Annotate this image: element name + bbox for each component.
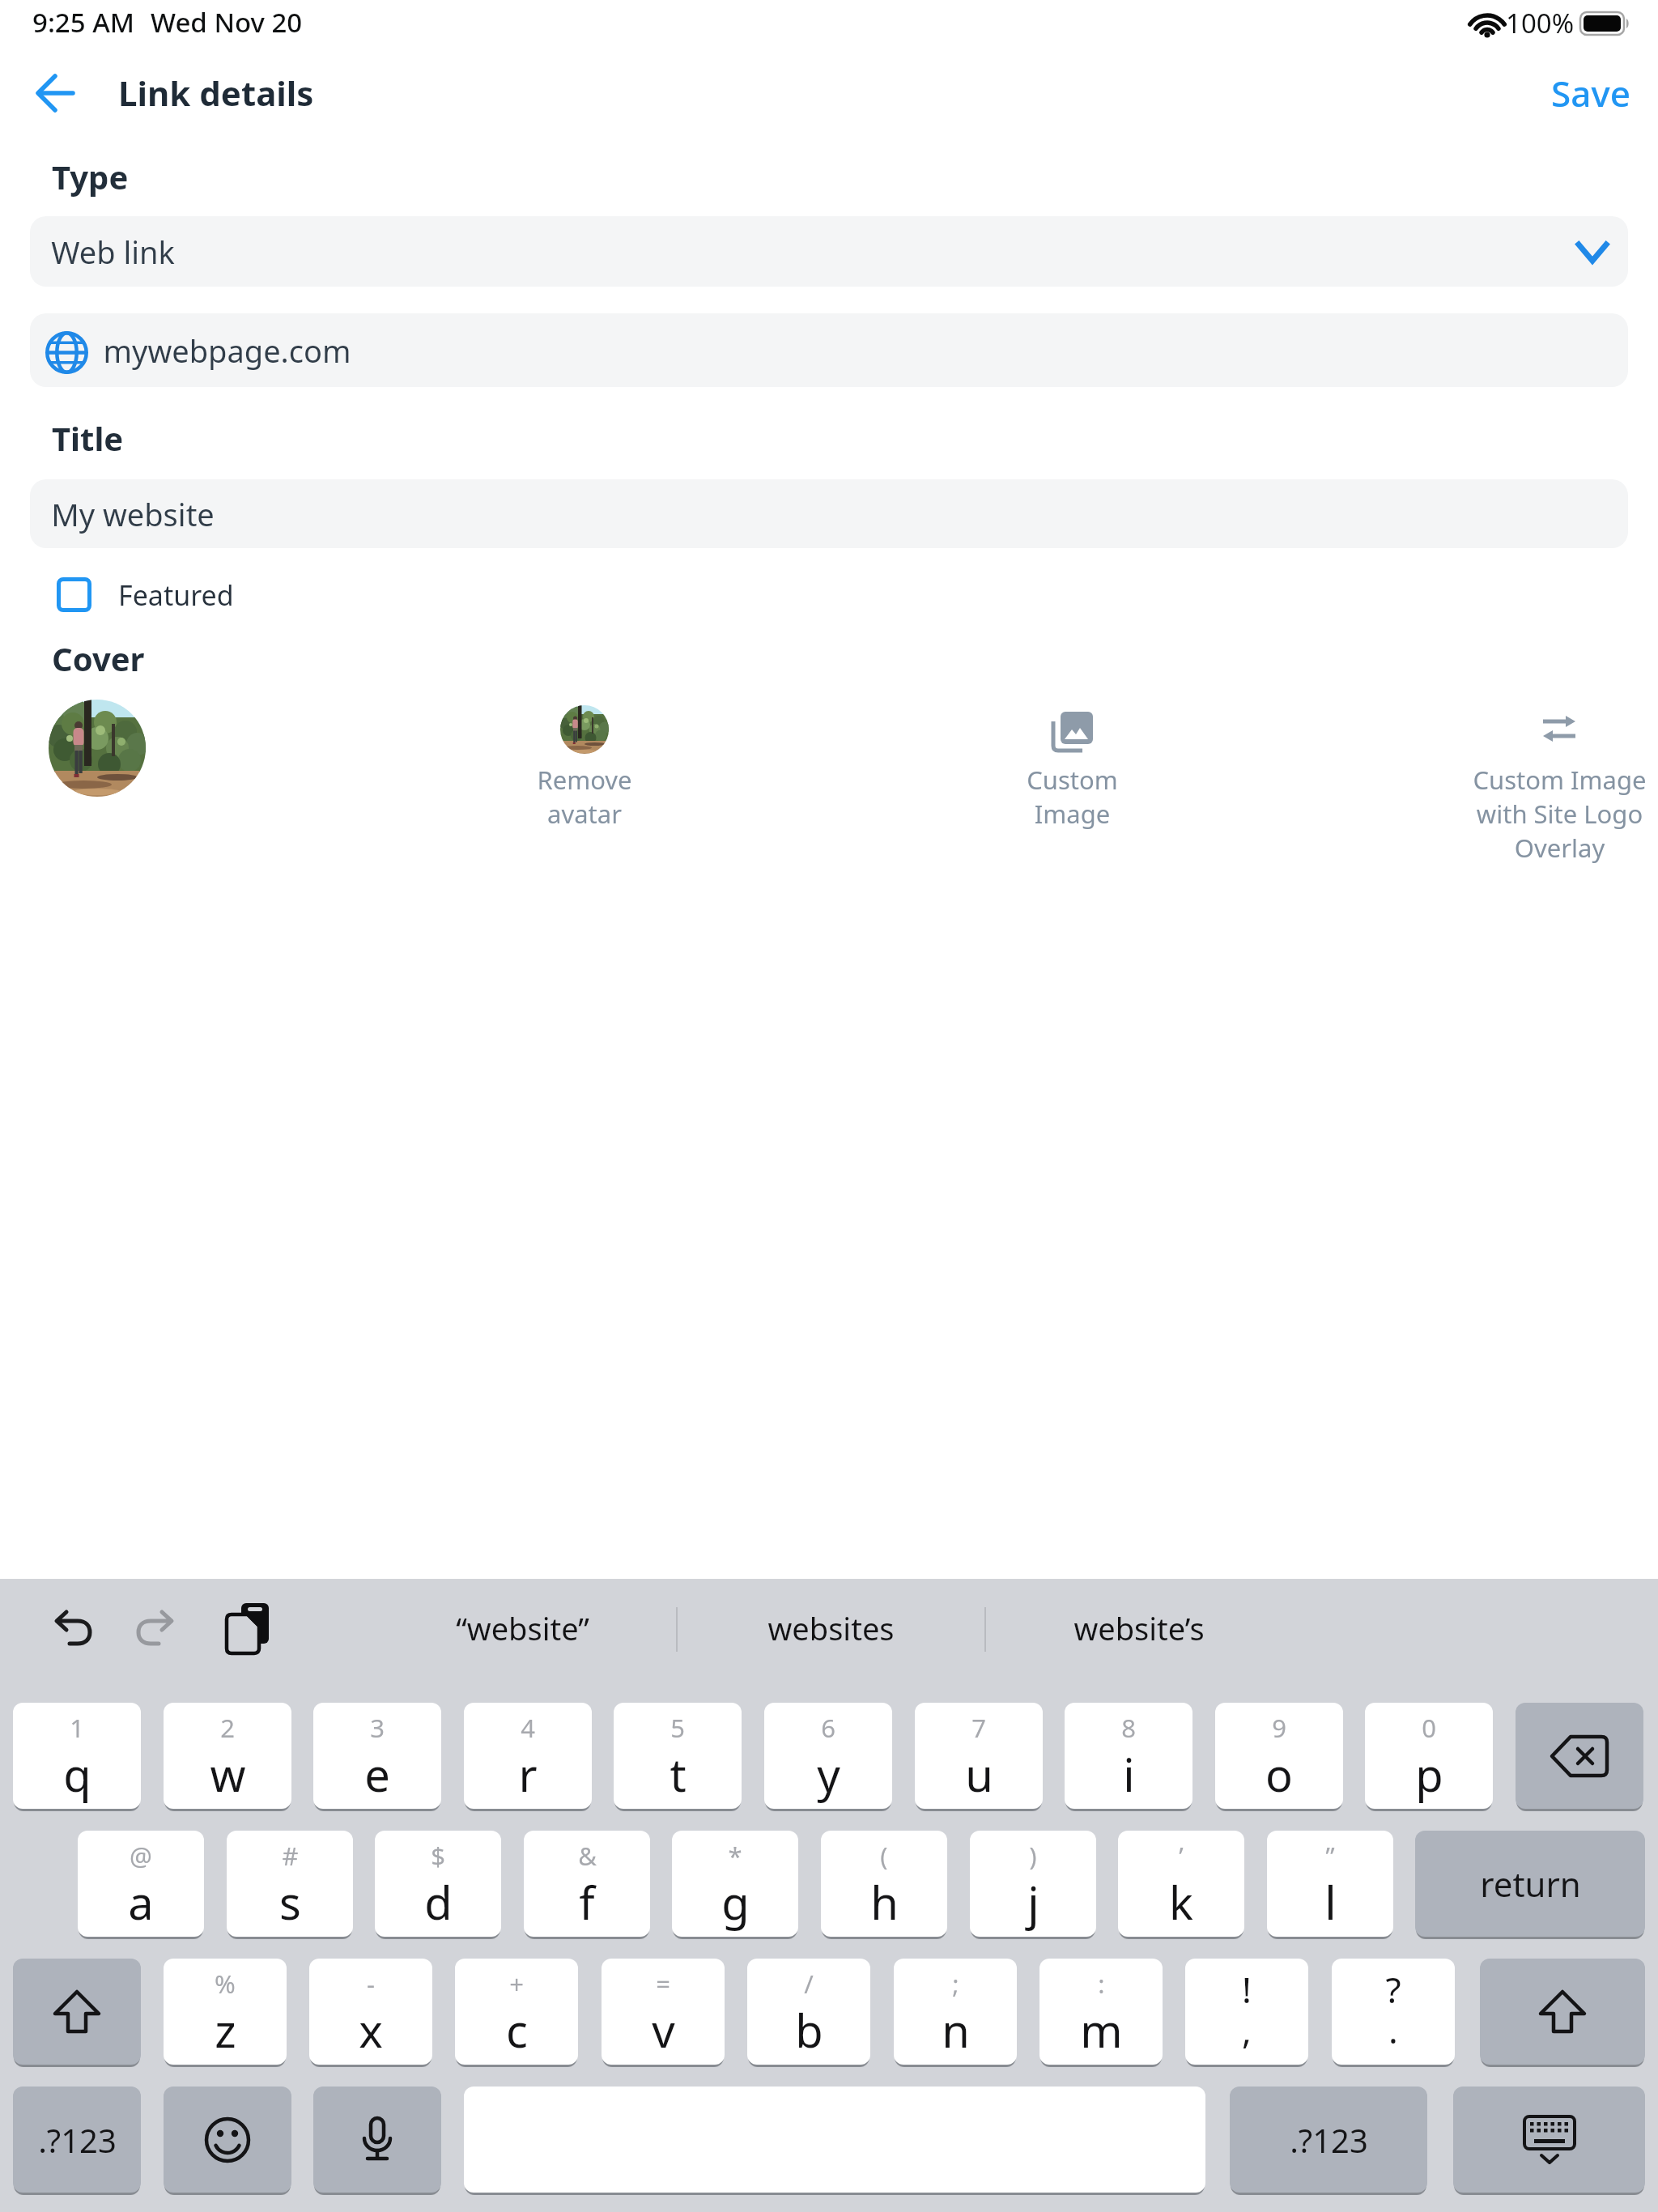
button[interactable] bbox=[53, 1610, 92, 1647]
button[interactable]: My website bbox=[30, 479, 1628, 548]
staticText: 100% bbox=[1506, 5, 1575, 41]
staticText: 5 bbox=[670, 1711, 685, 1745]
staticText: Save bbox=[1551, 69, 1630, 117]
button[interactable]: % bbox=[164, 1959, 287, 2065]
staticText: Cover bbox=[52, 636, 145, 680]
button[interactable]: Custom Image with Site Logo Overlay bbox=[1397, 696, 1658, 907]
button[interactable] bbox=[313, 2087, 441, 2193]
staticText: g bbox=[721, 1871, 750, 1933]
staticText: 1 bbox=[70, 1711, 84, 1745]
button[interactable]: # bbox=[227, 1831, 353, 1937]
staticText: i bbox=[1123, 1743, 1135, 1805]
staticText: mywebpage.com bbox=[103, 330, 351, 372]
button[interactable]: website’s bbox=[977, 1603, 1301, 1653]
button[interactable]: 6 bbox=[764, 1703, 892, 1809]
button[interactable]: websites bbox=[669, 1603, 993, 1653]
staticText: Remove avatar bbox=[537, 763, 632, 831]
button[interactable]: 4 bbox=[464, 1703, 592, 1809]
button[interactable]: 3 bbox=[313, 1703, 441, 1809]
staticText: x bbox=[359, 1999, 383, 2061]
button[interactable]: $ bbox=[375, 1831, 501, 1937]
button[interactable]: “website” bbox=[360, 1603, 684, 1653]
staticText: ’ bbox=[1179, 1839, 1184, 1873]
staticText: ; bbox=[952, 1967, 959, 2001]
button[interactable] bbox=[164, 2087, 291, 2193]
button[interactable] bbox=[1453, 2087, 1645, 2193]
button[interactable]: @ bbox=[78, 1831, 204, 1937]
button[interactable] bbox=[223, 1603, 269, 1653]
button[interactable]: 1 bbox=[13, 1703, 141, 1809]
staticText: e bbox=[364, 1743, 390, 1805]
button[interactable]: 9 bbox=[1215, 1703, 1343, 1809]
button[interactable]: ) bbox=[970, 1831, 1096, 1937]
button[interactable]: 2 bbox=[164, 1703, 291, 1809]
staticText: return bbox=[1480, 1861, 1581, 1907]
button[interactable]: ? bbox=[1332, 1959, 1455, 2065]
staticText: Title bbox=[52, 416, 124, 460]
staticText: h bbox=[870, 1871, 899, 1933]
staticText: Custom Image with Site Logo Overlay bbox=[1473, 763, 1647, 865]
staticText: z bbox=[215, 1999, 236, 2061]
button[interactable]: & bbox=[524, 1831, 650, 1937]
staticText: Link details bbox=[118, 70, 314, 116]
button[interactable]: / bbox=[747, 1959, 870, 2065]
staticText: 4 bbox=[521, 1711, 535, 1745]
staticText: .?123 bbox=[38, 2118, 117, 2162]
button[interactable]: : bbox=[1039, 1959, 1163, 2065]
staticText: ? bbox=[1385, 1965, 1401, 2014]
button[interactable] bbox=[1516, 1703, 1643, 1809]
button[interactable] bbox=[57, 577, 91, 612]
button[interactable] bbox=[28, 66, 83, 120]
staticText: / bbox=[804, 1967, 814, 2001]
button[interactable]: - bbox=[309, 1959, 432, 2065]
button[interactable]: 0 bbox=[1365, 1703, 1493, 1809]
staticText: Custom Image bbox=[1027, 763, 1118, 831]
staticText: .?123 bbox=[1290, 2118, 1368, 2162]
button[interactable] bbox=[49, 700, 146, 797]
staticText: Type bbox=[52, 155, 129, 198]
staticText: - bbox=[367, 1967, 375, 2001]
button[interactable]: ! bbox=[1185, 1959, 1308, 2065]
button[interactable] bbox=[1480, 1959, 1645, 2065]
button[interactable]: 7 bbox=[915, 1703, 1043, 1809]
button[interactable]: = bbox=[602, 1959, 725, 2065]
staticText: Wed Nov 20 bbox=[151, 4, 303, 40]
staticText: . bbox=[1388, 2006, 1398, 2054]
staticText: l bbox=[1324, 1871, 1337, 1933]
button[interactable]: return bbox=[1415, 1831, 1645, 1937]
button[interactable]: + bbox=[455, 1959, 578, 2065]
button[interactable]: .?123 bbox=[13, 2087, 141, 2193]
button[interactable] bbox=[13, 1959, 141, 2065]
staticText: website’s bbox=[1073, 1607, 1205, 1649]
button[interactable]: 5 bbox=[614, 1703, 742, 1809]
staticText: Web link bbox=[51, 231, 175, 273]
button[interactable]: * bbox=[672, 1831, 798, 1937]
button[interactable]: Web link bbox=[30, 216, 1628, 287]
staticText: @ bbox=[130, 1839, 152, 1873]
button[interactable]: Custom Image bbox=[910, 696, 1234, 874]
staticText: : bbox=[1098, 1967, 1105, 2001]
button[interactable] bbox=[136, 1610, 175, 1647]
button[interactable]: Save bbox=[1538, 68, 1643, 118]
staticText: 6 bbox=[821, 1711, 835, 1745]
button[interactable]: mywebpage.com bbox=[30, 313, 1628, 387]
staticText: + bbox=[509, 1967, 524, 2001]
staticText: 8 bbox=[1121, 1711, 1136, 1745]
staticText: t bbox=[670, 1743, 687, 1805]
staticText: 9 bbox=[1272, 1711, 1286, 1745]
button[interactable]: ’ bbox=[1118, 1831, 1244, 1937]
staticText: Featured bbox=[118, 576, 234, 614]
staticText: n bbox=[942, 1999, 970, 2061]
staticText: p bbox=[1415, 1743, 1443, 1805]
staticText: m bbox=[1080, 1999, 1123, 2061]
button[interactable]: .?123 bbox=[1230, 2087, 1427, 2193]
button[interactable]: ( bbox=[821, 1831, 947, 1937]
button[interactable]: 8 bbox=[1065, 1703, 1192, 1809]
staticText: f bbox=[579, 1871, 595, 1933]
staticText: b bbox=[795, 1999, 823, 2061]
button[interactable]: Remove avatar bbox=[423, 696, 746, 874]
button[interactable]: ” bbox=[1267, 1831, 1393, 1937]
staticText: ( bbox=[880, 1839, 888, 1873]
button[interactable]: ; bbox=[894, 1959, 1017, 2065]
